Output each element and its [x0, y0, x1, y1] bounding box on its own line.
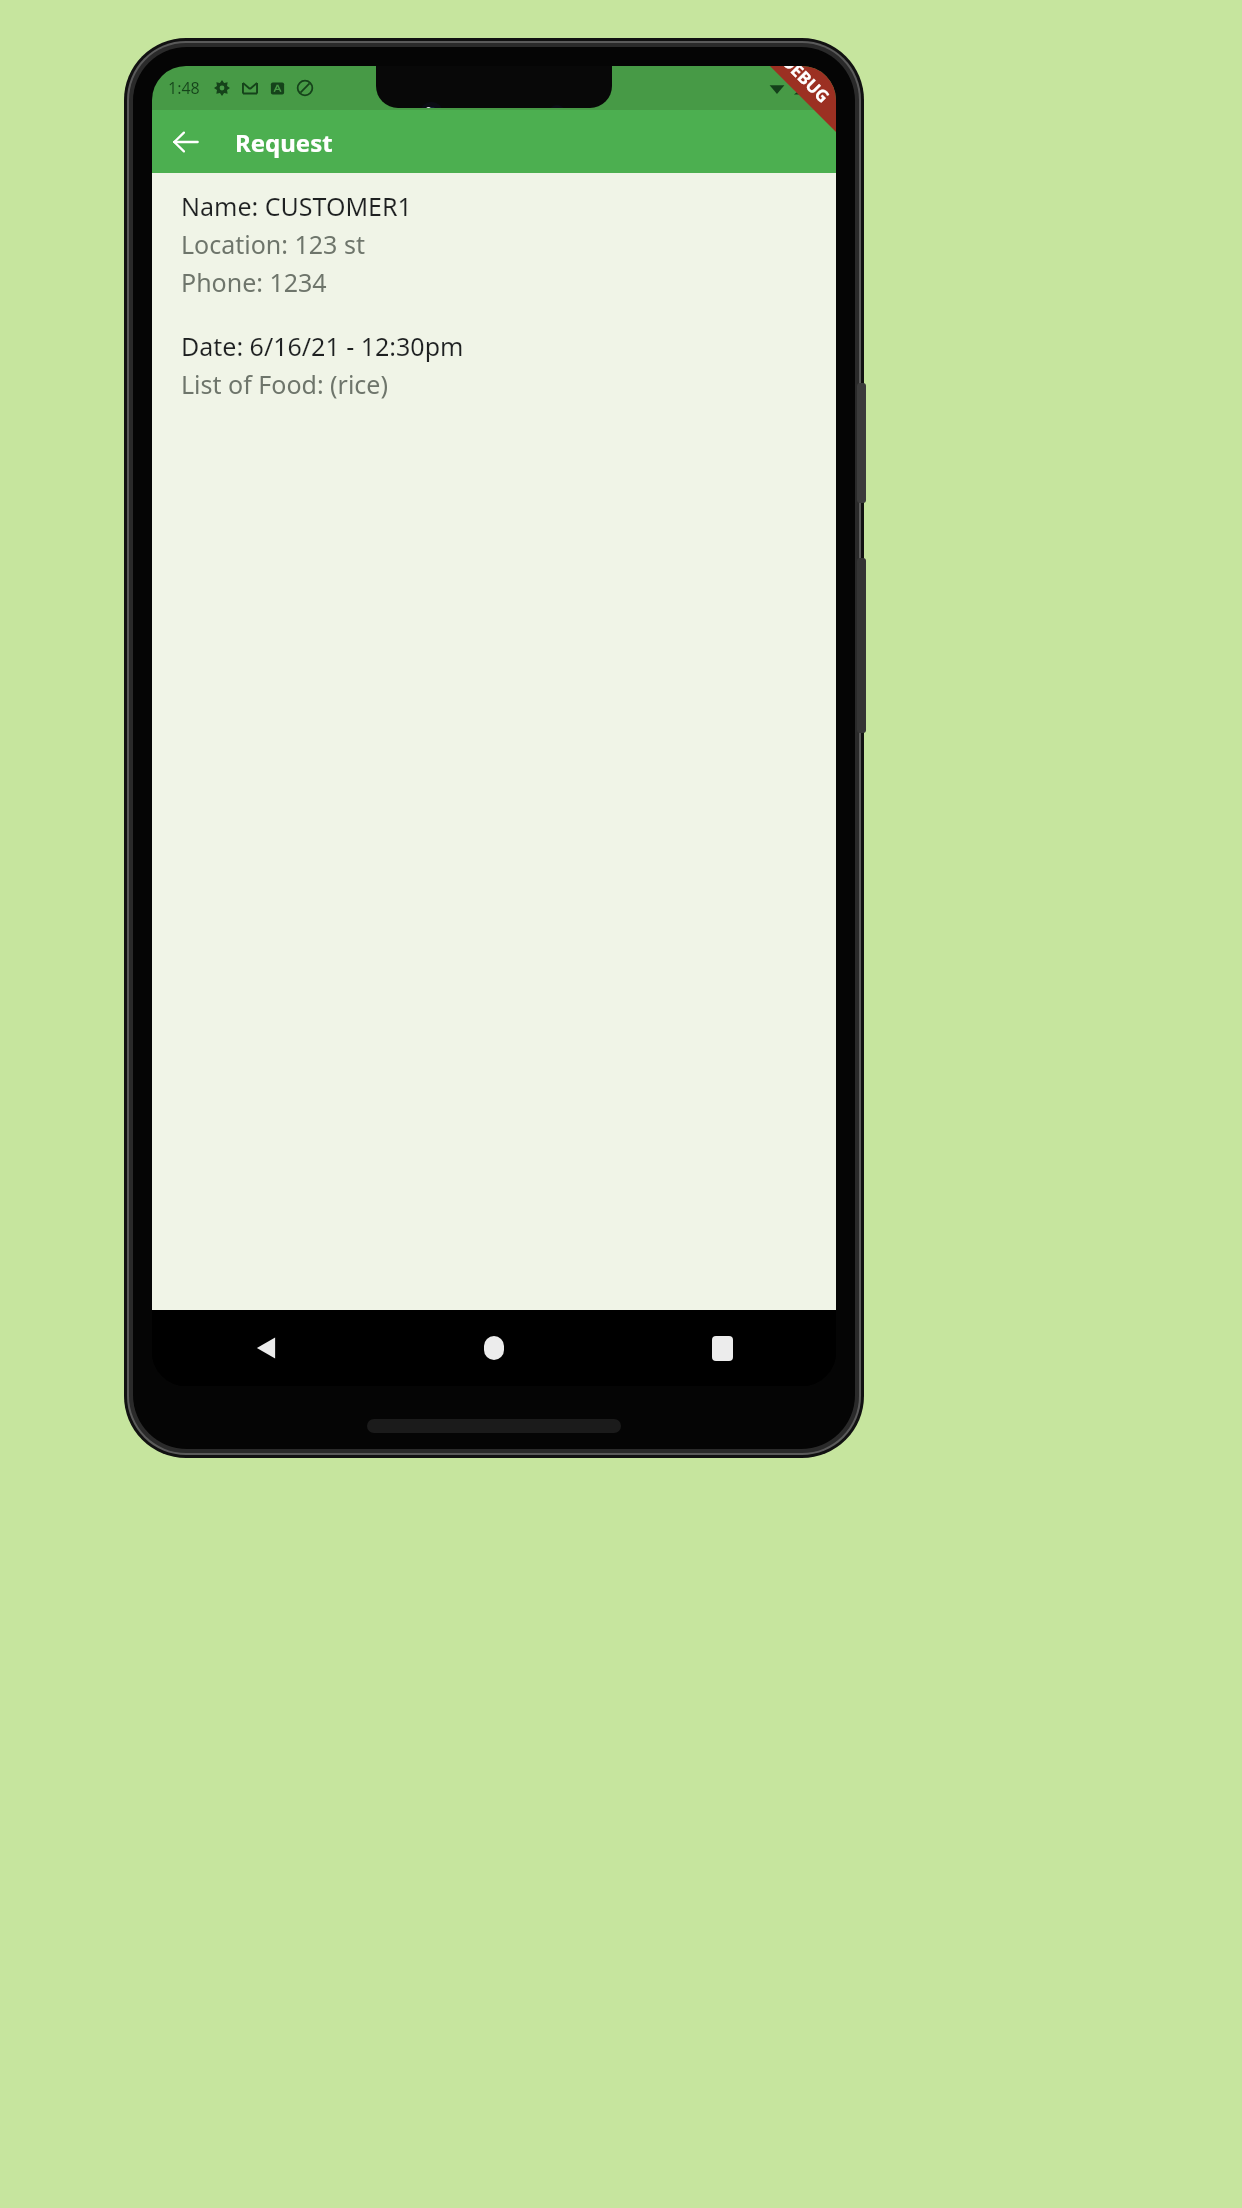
staticText: Location: 123 st	[181, 227, 365, 261]
button[interactable]: Home	[380, 1310, 608, 1386]
button[interactable]: Back	[162, 118, 210, 166]
button[interactable]: Recent apps	[608, 1310, 836, 1386]
staticText: Date: 6/16/21 - 12:30pm	[181, 329, 464, 363]
staticText: Request	[235, 126, 333, 159]
button[interactable]: Back	[152, 1310, 380, 1386]
staticText: DEBUG	[777, 66, 835, 108]
staticText: Phone: 1234	[181, 265, 327, 299]
staticText: 1:48	[168, 77, 200, 99]
staticText: List of Food: (rice)	[181, 367, 388, 401]
staticText: Name: CUSTOMER1	[181, 189, 412, 223]
